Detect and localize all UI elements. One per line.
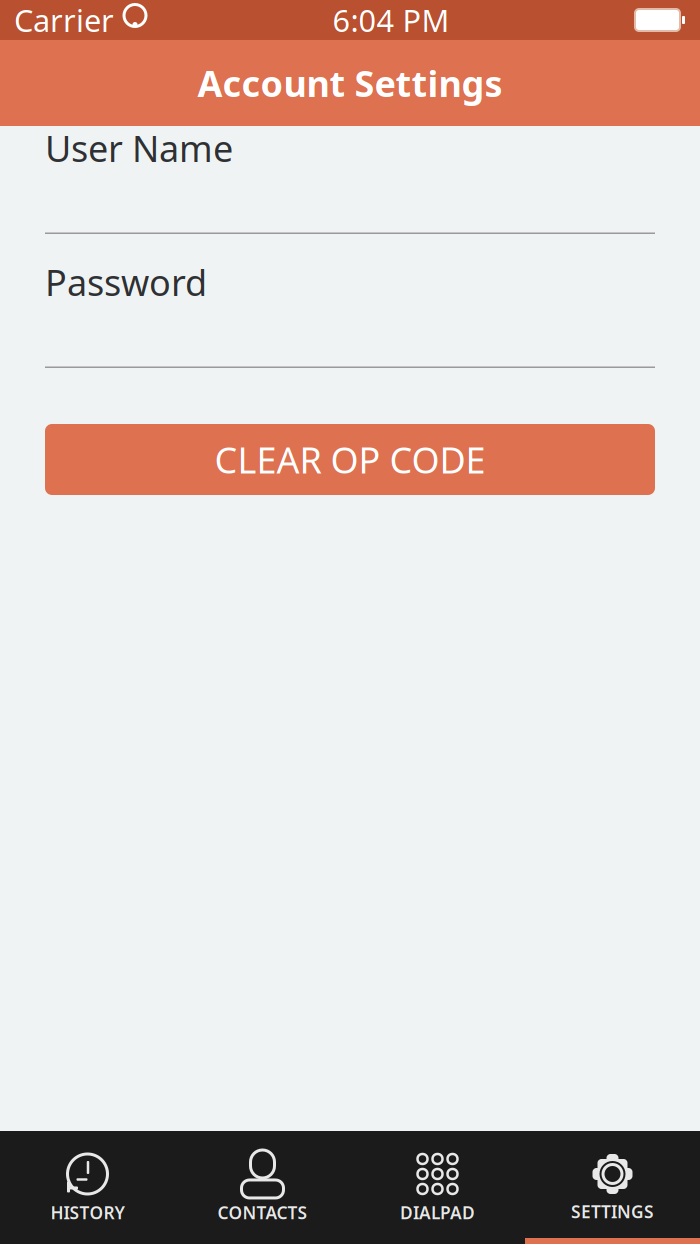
button[interactable]: CONTACTS [175,1131,350,1244]
button[interactable]: HISTORY [0,1131,175,1244]
staticText: SETTINGS [571,1200,654,1223]
staticText: CLEAR OP CODE [214,436,485,483]
staticText: Account Settings [197,59,502,107]
staticText: Password [45,258,207,306]
button[interactable]: SETTINGS [525,1131,700,1244]
staticText: Carrier [14,0,114,40]
button[interactable]: DIALPAD [350,1131,525,1244]
staticText: DIALPAD [400,1201,475,1224]
staticText: 6:04 PM [332,0,449,40]
staticText: CONTACTS [217,1201,307,1224]
button[interactable]: CLEAR OP CODE [45,424,655,495]
staticText: HISTORY [50,1201,124,1224]
staticText: User Name [45,124,233,172]
